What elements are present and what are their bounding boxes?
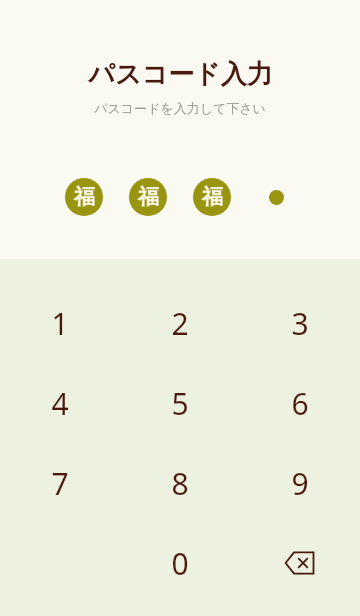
button[interactable]: 2 xyxy=(120,283,240,363)
button[interactable]: 1 xyxy=(0,283,120,363)
staticText: 0 xyxy=(171,543,189,584)
staticText: 2 xyxy=(171,303,189,344)
staticText: 福 xyxy=(74,184,95,210)
button[interactable]: 9 xyxy=(240,443,360,523)
button[interactable]: 8 xyxy=(120,443,240,523)
staticText: 5 xyxy=(171,383,189,424)
button[interactable]: 3 xyxy=(240,283,360,363)
button[interactable]: Backspace xyxy=(240,523,360,603)
button[interactable]: 7 xyxy=(0,443,120,523)
button[interactable]: 0 xyxy=(120,523,240,603)
staticText: 福 xyxy=(202,184,223,210)
staticText: 3 xyxy=(291,303,309,344)
staticText: 1 xyxy=(51,303,69,344)
staticText: 4 xyxy=(51,383,69,424)
staticText: パスコードを入力して下さい xyxy=(94,100,266,116)
staticText: パスコード入力 xyxy=(88,58,273,91)
staticText: 6 xyxy=(291,383,309,424)
button[interactable]: 5 xyxy=(120,363,240,443)
button[interactable]: 6 xyxy=(240,363,360,443)
staticText: 福 xyxy=(138,184,159,210)
button[interactable]: 4 xyxy=(0,363,120,443)
staticText: 8 xyxy=(171,463,189,504)
staticText: 9 xyxy=(291,463,309,504)
staticText: 7 xyxy=(51,463,69,504)
